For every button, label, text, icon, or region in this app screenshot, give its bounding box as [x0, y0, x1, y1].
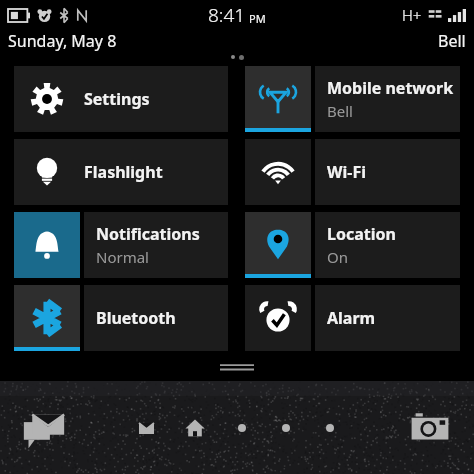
staticText: Bell	[327, 101, 353, 121]
button[interactable]: Page	[275, 417, 297, 439]
button[interactable]: Page	[319, 417, 341, 439]
staticText: Notifications	[96, 223, 200, 245]
button[interactable]: Home	[181, 414, 209, 442]
staticText: Settings	[84, 88, 150, 110]
button[interactable]: Location	[245, 212, 460, 278]
staticText: Alarm	[327, 307, 376, 329]
button[interactable]: Camera	[404, 402, 456, 454]
staticText: PM	[249, 11, 266, 26]
button[interactable]: Mobile network	[245, 66, 460, 132]
staticText: Sunday, May 8	[8, 30, 117, 52]
button[interactable]: Wi-Fi	[245, 139, 460, 205]
staticText: H+	[402, 5, 422, 25]
button[interactable]: Mail	[133, 415, 159, 441]
staticText: Bluetooth	[96, 307, 176, 329]
staticText: Bell	[438, 30, 466, 52]
staticText: Normal	[96, 247, 149, 267]
button[interactable]: Flashlight	[14, 139, 228, 205]
button[interactable]: Close quick settings	[0, 359, 474, 377]
staticText: Mobile network	[327, 77, 454, 99]
staticText: 8:41	[208, 2, 246, 28]
staticText: On	[327, 247, 348, 267]
button[interactable]: Bluetooth	[14, 285, 228, 351]
button[interactable]: Messages	[18, 402, 70, 454]
button[interactable]: Page	[231, 417, 253, 439]
button[interactable]: Alarm	[245, 285, 460, 351]
staticText: Location	[327, 223, 396, 245]
staticText: Wi-Fi	[327, 161, 366, 183]
button[interactable]: Settings	[14, 66, 228, 132]
staticText: Flashlight	[84, 161, 163, 183]
button[interactable]: Notifications	[14, 212, 228, 278]
